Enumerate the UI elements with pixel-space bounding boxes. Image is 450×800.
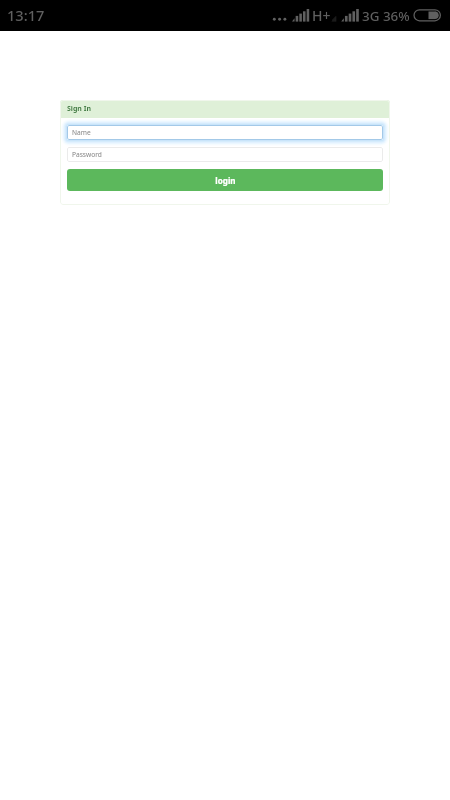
- staticText: login: [215, 175, 236, 186]
- button[interactable]: Name: [67, 125, 383, 140]
- staticText: H+: [312, 6, 331, 25]
- staticText: Sign In: [67, 104, 92, 114]
- button[interactable]: login: [67, 169, 383, 191]
- staticText: Password: [72, 150, 102, 159]
- staticText: 13:17: [7, 5, 45, 25]
- other: Signal and battery status: [268, 0, 450, 31]
- staticText: Name: [72, 128, 91, 137]
- staticText: 3G 36%: [362, 7, 410, 25]
- button[interactable]: Password: [67, 147, 383, 162]
